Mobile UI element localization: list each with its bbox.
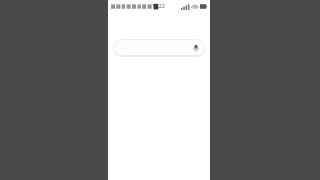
button[interactable]: Voice search <box>189 41 202 54</box>
staticText: 15:22 <box>152 3 165 10</box>
button[interactable]: Voice search <box>113 39 205 56</box>
